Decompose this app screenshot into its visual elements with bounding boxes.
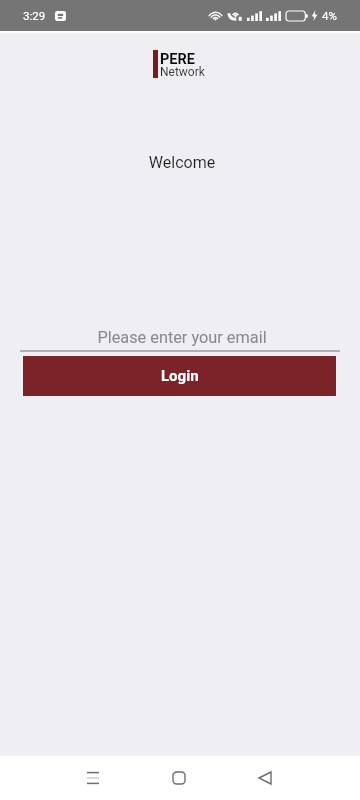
staticText: Login: [161, 367, 199, 385]
staticText: Welcome: [2, 153, 360, 172]
staticText: Please enter your email: [22, 328, 342, 347]
button[interactable]: Login: [23, 356, 336, 396]
button[interactable]: Recent apps: [71, 756, 115, 800]
staticText: Network: [160, 65, 205, 79]
button[interactable]: Home: [157, 756, 201, 800]
staticText: 4%: [322, 9, 337, 22]
button[interactable]: Back: [243, 756, 287, 800]
staticText: PERE: [160, 51, 195, 68]
button[interactable]: Please enter your email: [20, 326, 340, 352]
staticText: 3:29: [23, 9, 46, 22]
